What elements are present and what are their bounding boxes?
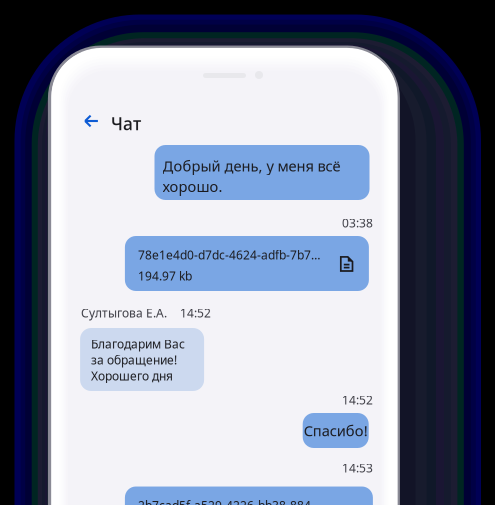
staticText: Чат — [111, 112, 141, 135]
staticText: 2b7cad5f-a529-4226-bb38-884… 139.44 kb — [138, 497, 320, 505]
staticText: 14:52 — [342, 392, 373, 408]
staticText: Благодарим Вас за обращение! Хорошего дн… — [91, 336, 185, 384]
staticText: 78e1e4d0-d7dc-4624-adfb-7b7… 194.97 kb — [138, 247, 320, 284]
staticText: Добрый день, у меня всё хорошо. — [162, 156, 340, 196]
staticText: 14:53 — [342, 460, 373, 476]
staticText: Султыгова Е.А. — [81, 305, 167, 321]
staticText: Спасибо! — [304, 421, 368, 440]
button[interactable]: Back — [84, 114, 99, 128]
staticText: 14:52 — [180, 305, 211, 321]
staticText: 03:38 — [342, 215, 373, 231]
